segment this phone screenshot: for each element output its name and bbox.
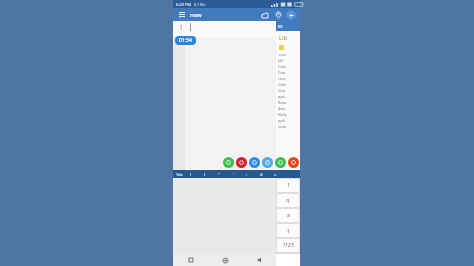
staticText: ( bbox=[190, 172, 192, 177]
button[interactable]: vcon bbox=[278, 76, 300, 81]
button[interactable]: Colle bbox=[278, 82, 300, 87]
button[interactable]: ) bbox=[198, 170, 212, 178]
button[interactable]: ' bbox=[226, 170, 240, 178]
staticText: 01:54 bbox=[179, 37, 192, 44]
button[interactable]: pyth bbox=[278, 118, 300, 123]
button[interactable]: : bbox=[240, 170, 254, 178]
staticText: 1 bbox=[287, 182, 290, 189]
button[interactable]: Requ bbox=[278, 100, 300, 105]
staticText: a bbox=[287, 212, 290, 219]
button[interactable]: Dow bbox=[278, 70, 300, 75]
button[interactable]: # bbox=[254, 170, 268, 178]
staticText: 1 bbox=[179, 23, 184, 33]
button[interactable]: Close bbox=[288, 157, 299, 168]
button[interactable]: = bbox=[268, 170, 282, 178]
button[interactable]: Dow bbox=[278, 88, 300, 93]
staticText: new bbox=[190, 11, 202, 19]
staticText: : bbox=[246, 172, 248, 177]
button[interactable]: Save bbox=[262, 157, 273, 168]
button[interactable]: Colle bbox=[278, 64, 300, 69]
button[interactable]: q bbox=[277, 194, 299, 207]
button[interactable]: Location bbox=[273, 10, 283, 20]
button[interactable]: ↑ bbox=[277, 224, 299, 237]
button[interactable]: insta bbox=[278, 124, 300, 129]
button[interactable]: .com bbox=[278, 52, 300, 57]
button[interactable]: data bbox=[278, 106, 300, 111]
button[interactable]: 01:54 bbox=[179, 37, 192, 44]
staticText: " bbox=[218, 172, 220, 177]
button[interactable]: Run bbox=[223, 157, 234, 168]
button[interactable]: Stop bbox=[236, 157, 247, 168]
staticText: q bbox=[286, 197, 290, 204]
staticText: ↑ bbox=[286, 228, 291, 234]
button[interactable]: Back bbox=[242, 254, 276, 266]
button[interactable]: pyth bbox=[278, 94, 300, 99]
staticText: ?123 bbox=[283, 242, 294, 249]
staticText: # bbox=[260, 172, 263, 177]
button[interactable]: Back bbox=[286, 10, 296, 20]
button[interactable]: NoVo bbox=[278, 112, 300, 117]
staticText: ' bbox=[233, 172, 234, 177]
button[interactable]: Tab bbox=[176, 172, 183, 177]
staticText: = bbox=[274, 172, 277, 177]
button[interactable]: Recents bbox=[173, 254, 208, 266]
button[interactable]: ( bbox=[183, 170, 198, 178]
staticText: Lib bbox=[279, 34, 288, 42]
button[interactable]: a bbox=[277, 209, 299, 222]
button[interactable]: Open folder bbox=[260, 10, 270, 20]
staticText: ES bbox=[278, 24, 283, 29]
staticText: 0.1K/s bbox=[194, 2, 206, 7]
staticText: ) bbox=[204, 172, 206, 177]
button[interactable]: Menu bbox=[177, 10, 186, 19]
button[interactable]: Home bbox=[208, 254, 242, 266]
button[interactable]: kt0 bbox=[278, 58, 300, 63]
button[interactable]: 1 bbox=[277, 179, 299, 192]
button[interactable]: ?123 bbox=[277, 239, 299, 252]
button[interactable]: Upload bbox=[275, 157, 286, 168]
button[interactable]: " bbox=[212, 170, 226, 178]
staticText: 6:20 PM bbox=[176, 2, 192, 7]
button[interactable]: Edit bbox=[249, 157, 260, 168]
